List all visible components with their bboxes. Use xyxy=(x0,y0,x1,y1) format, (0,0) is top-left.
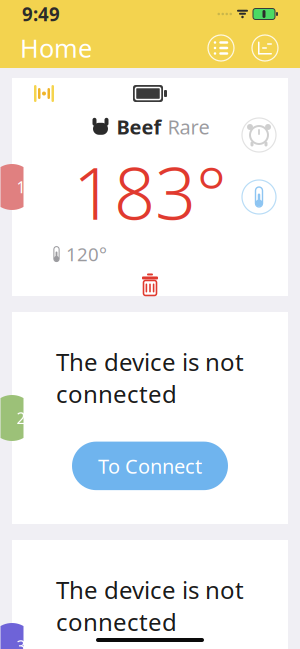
staticText: 2 xyxy=(16,407,25,429)
staticText: Rare xyxy=(167,113,209,140)
button[interactable]: Temperature settings xyxy=(240,178,278,216)
button[interactable]: Alarm xyxy=(240,116,278,154)
button[interactable]: List xyxy=(206,33,236,63)
button[interactable]: To Connect xyxy=(72,442,228,490)
staticText: 183° xyxy=(73,144,227,240)
staticText: Home xyxy=(20,31,92,65)
staticText: 3 xyxy=(16,635,25,649)
staticText: The device is not connected xyxy=(56,346,244,409)
staticText: To Connect xyxy=(98,453,202,479)
staticText: The device is not connected xyxy=(56,574,244,637)
button[interactable]: Delete xyxy=(134,266,166,302)
staticText: 120° xyxy=(66,242,107,266)
staticText: 9:49 xyxy=(22,2,60,26)
staticText: 1 xyxy=(16,176,25,198)
staticText: Beef xyxy=(116,113,161,140)
button[interactable]: Charts xyxy=(250,33,280,63)
